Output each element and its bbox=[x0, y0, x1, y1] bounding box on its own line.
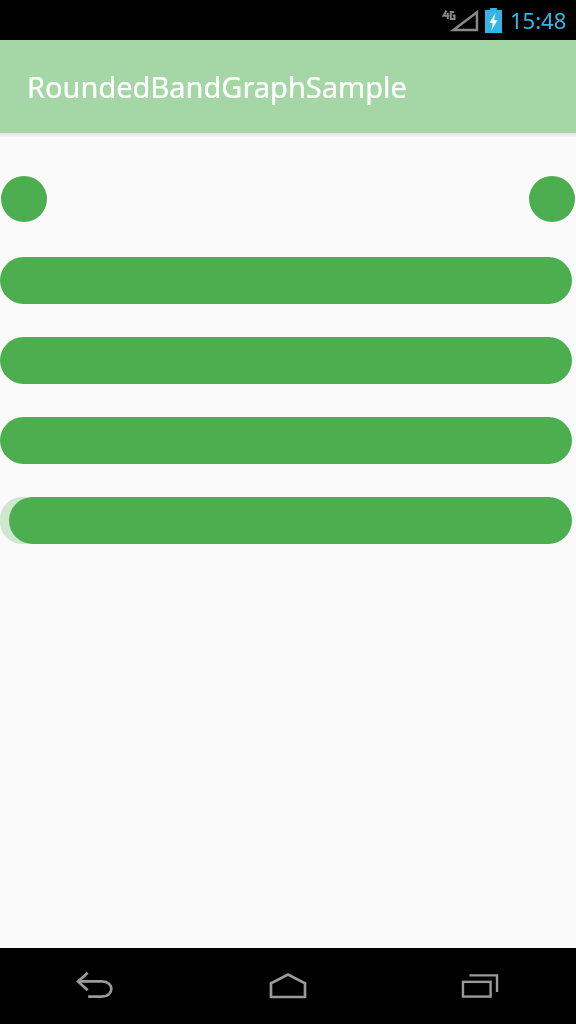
button[interactable]: Home bbox=[192, 948, 384, 1024]
staticText: RoundedBandGraphSample bbox=[27, 67, 407, 106]
button[interactable]: Recent apps bbox=[384, 948, 576, 1024]
button[interactable] bbox=[0, 137, 576, 948]
button[interactable]: Back bbox=[0, 948, 192, 1024]
staticText: 15:48 bbox=[510, 5, 567, 35]
